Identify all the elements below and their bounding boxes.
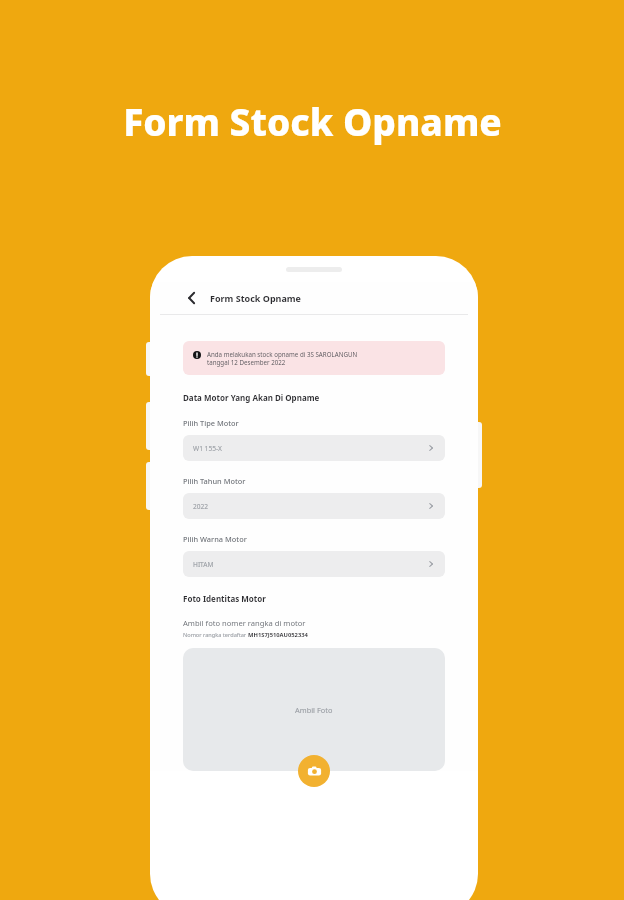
- button[interactable]: W1 155-X: [183, 435, 445, 461]
- button[interactable]: 2022: [183, 493, 445, 519]
- staticText: Form Stock Opname: [123, 96, 502, 146]
- staticText: Form Stock Opname: [210, 292, 301, 304]
- staticText: Data Motor Yang Akan Di Opname: [183, 392, 320, 403]
- button[interactable]: Ambil Foto: [183, 648, 445, 771]
- staticText: tanggal 12 Desember 2022: [207, 358, 286, 366]
- staticText: Anda melakukan stock opname di 3S SAROLA…: [207, 350, 358, 358]
- button[interactable]: Anda melakukan stock opname di 3S SAROLA…: [183, 341, 445, 375]
- button[interactable]: HITAM: [183, 551, 445, 577]
- staticText: Pilih Tipe Motor: [183, 418, 239, 428]
- staticText: Ambil foto nomer rangka di motor: [183, 618, 306, 628]
- staticText: MH1S7J510AU052334: [248, 631, 308, 639]
- button[interactable]: Ambil Foto: [298, 755, 330, 787]
- staticText: Pilih Tahun Motor: [183, 476, 246, 486]
- staticText: 2022: [193, 502, 209, 511]
- staticText: Foto Identitas Motor: [183, 593, 266, 604]
- staticText: Ambil Foto: [295, 705, 333, 715]
- staticText: Nomor rangka terdaftar: [183, 631, 248, 639]
- staticText: W1 155-X: [193, 444, 222, 453]
- staticText: HITAM: [193, 560, 214, 569]
- button[interactable]: Back: [182, 288, 202, 308]
- staticText: Pilih Warna Motor: [183, 534, 247, 544]
